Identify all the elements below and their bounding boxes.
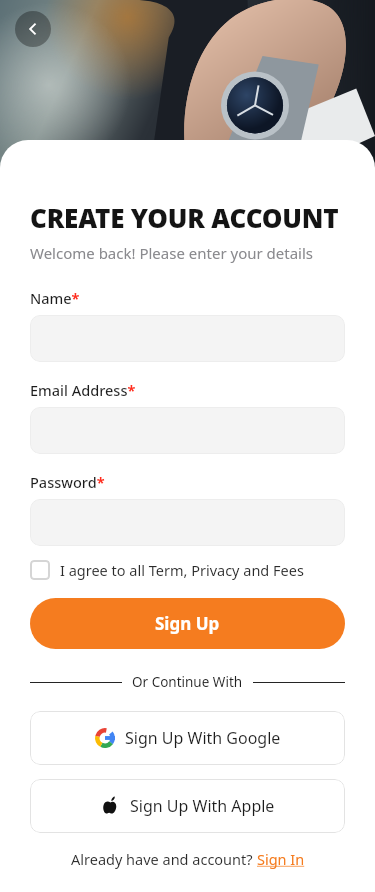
staticText: Already have and account?: [71, 849, 257, 869]
staticText: Welcome back! Please enter your details: [30, 243, 314, 263]
staticText: Sign Up With Apple: [130, 795, 275, 817]
staticText: Password*: [30, 472, 105, 492]
button[interactable]: I agree to all Term, Privacy and Fees: [30, 560, 345, 580]
staticText: Or Continue With: [132, 673, 243, 691]
staticText: CREATE YOUR ACCOUNT: [30, 200, 339, 235]
staticText: Sign Up: [155, 612, 220, 635]
staticText: I agree to all Term, Privacy and Fees: [60, 560, 304, 580]
button[interactable]: Back: [15, 11, 51, 47]
button[interactable]: Sign Up: [30, 598, 345, 649]
staticText: Sign Up With Google: [125, 727, 281, 749]
button[interactable]: Sign Up With Google: [30, 711, 345, 765]
staticText: Sign In: [257, 849, 305, 869]
staticText: Name*: [30, 288, 80, 308]
button[interactable]: Sign Up With Apple: [30, 779, 345, 833]
staticText: Email Address*: [30, 380, 136, 400]
button[interactable]: Sign In: [257, 849, 305, 869]
